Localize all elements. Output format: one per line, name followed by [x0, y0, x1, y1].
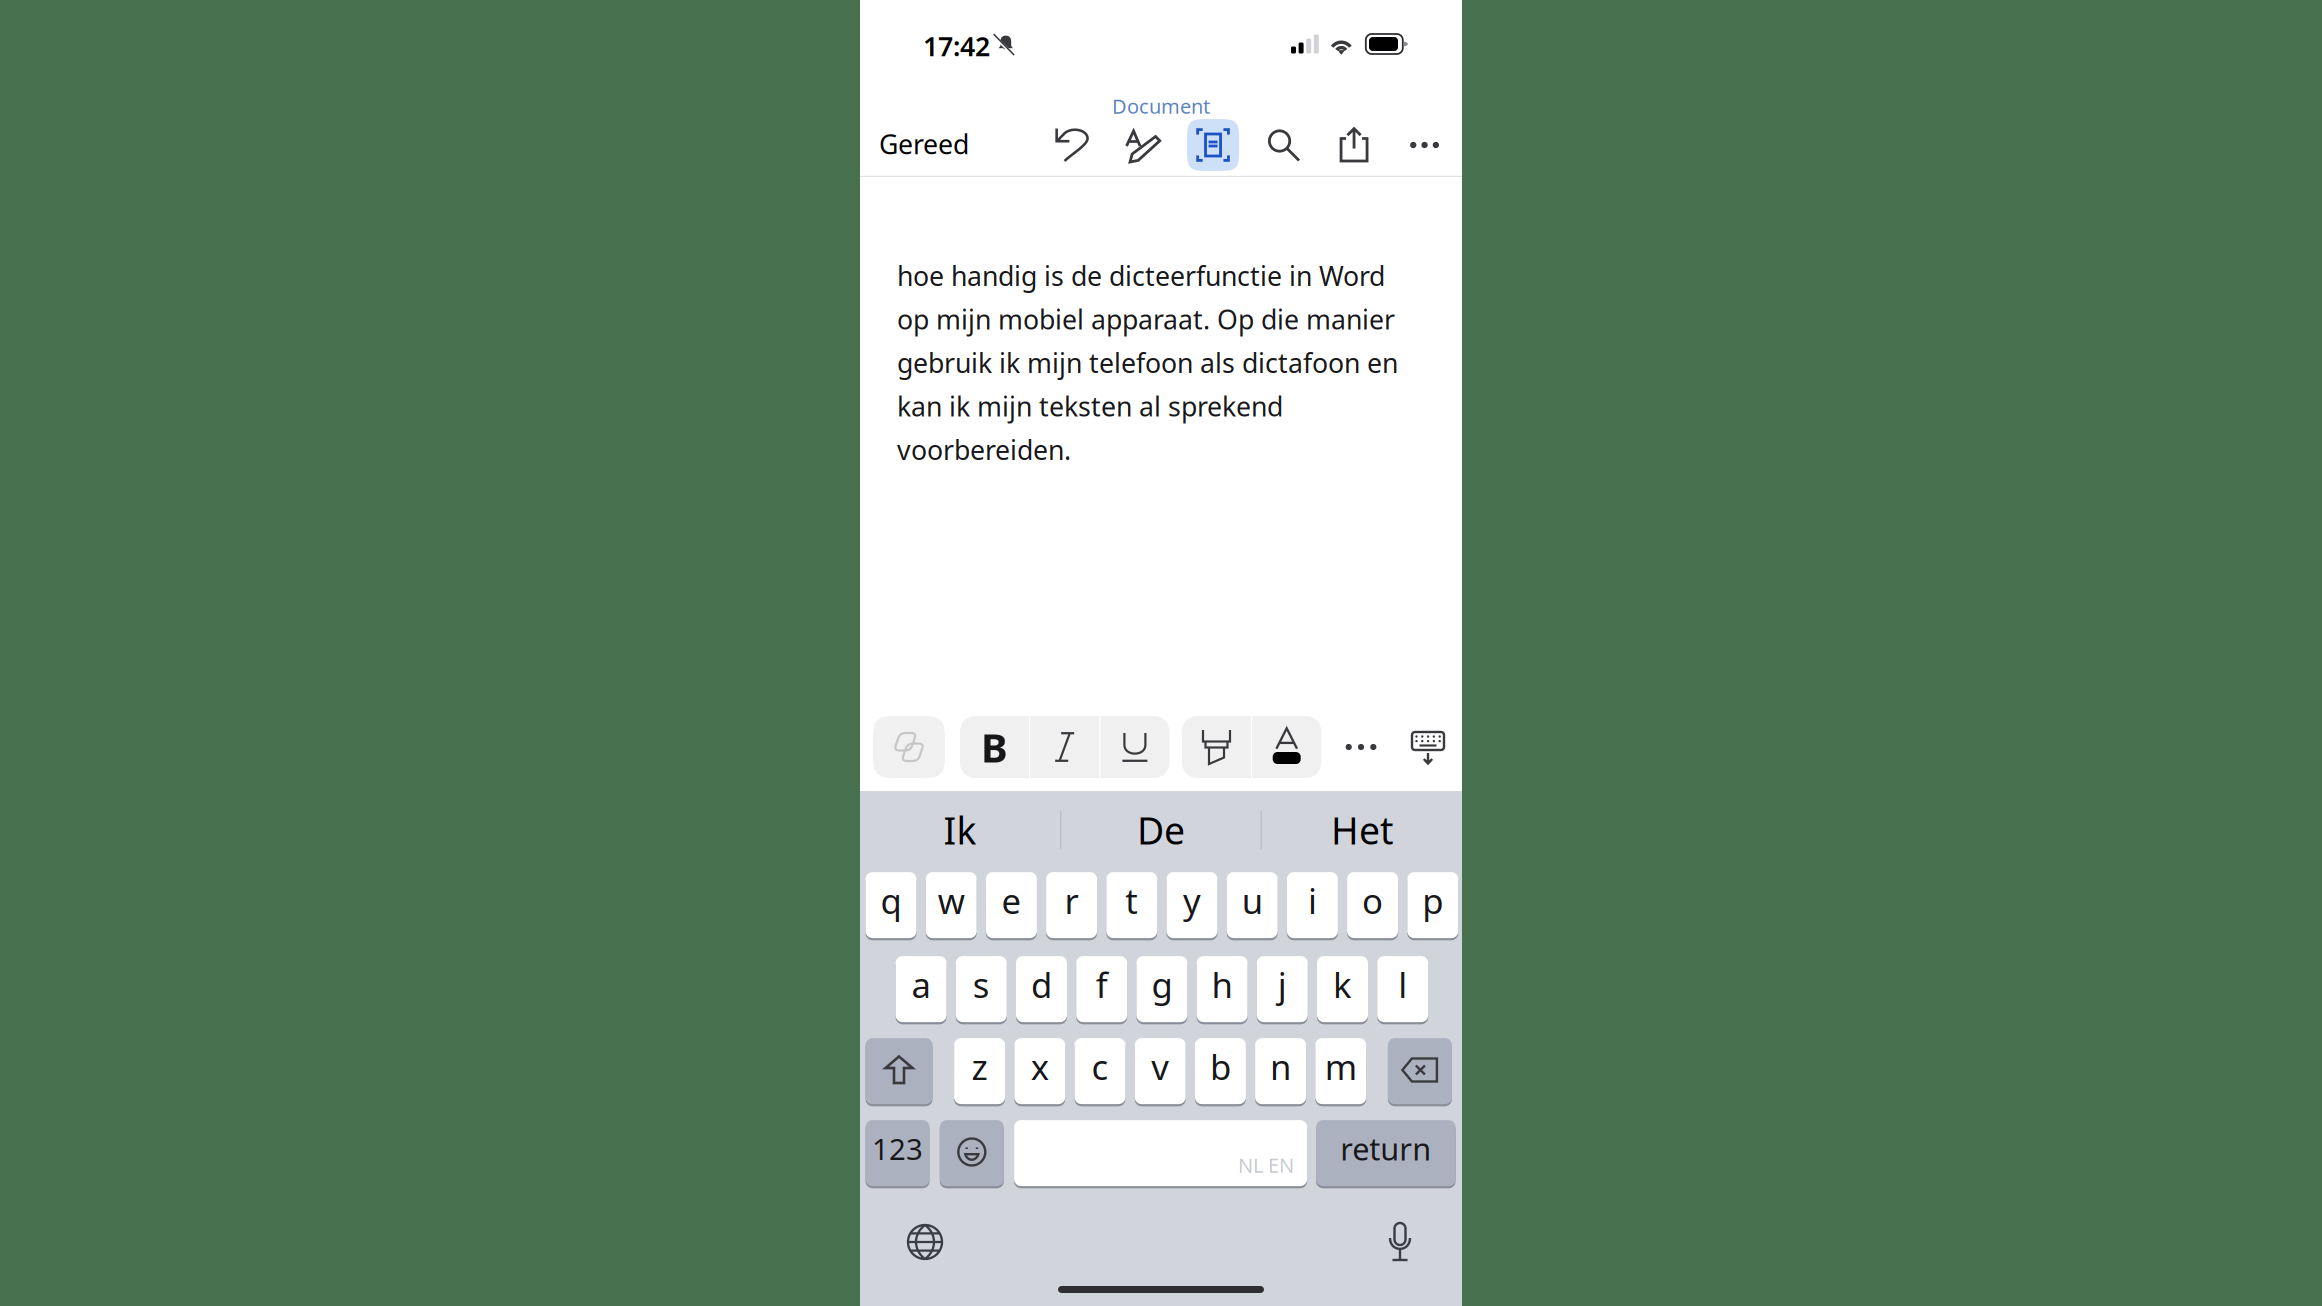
button[interactable]: a	[896, 955, 947, 1023]
staticText: 17:42	[923, 28, 990, 64]
button[interactable]: s	[956, 955, 1007, 1023]
button[interactable]: p	[1407, 871, 1458, 939]
button[interactable]: l	[1377, 955, 1428, 1023]
button[interactable]: i	[1287, 871, 1338, 939]
staticText: g	[1151, 961, 1172, 1007]
button[interactable]: Copilot	[873, 716, 945, 778]
button[interactable]: Font colour	[1252, 716, 1321, 778]
button[interactable]: k	[1317, 955, 1368, 1023]
button[interactable]: return	[1316, 1119, 1456, 1187]
staticText: r	[1065, 877, 1079, 923]
staticText: Het	[1331, 805, 1393, 855]
button[interactable]: z	[954, 1037, 1005, 1105]
button[interactable]: h	[1197, 955, 1248, 1023]
staticText: 123	[872, 1129, 923, 1168]
staticText: d	[1031, 961, 1052, 1007]
button[interactable]: Highlight	[1182, 716, 1251, 778]
staticText: voorbereiden.	[897, 432, 1071, 467]
staticText: b	[1210, 1043, 1231, 1089]
button[interactable]: Share	[1319, 117, 1389, 173]
staticText: return	[1340, 1128, 1431, 1169]
staticText: x	[1031, 1043, 1049, 1089]
staticText: B	[981, 720, 1008, 773]
button[interactable]: Change keyboard	[893, 1210, 957, 1274]
staticText: gebruik ik mijn telefoon als dictafoon e…	[897, 345, 1398, 380]
button[interactable]: De	[1061, 799, 1260, 861]
button[interactable]: Delete	[1388, 1037, 1452, 1105]
staticText: p	[1422, 877, 1443, 923]
button[interactable]: d	[1016, 955, 1067, 1023]
staticText: w	[938, 877, 965, 923]
button[interactable]: r	[1046, 871, 1097, 939]
staticText: Gereed	[879, 126, 969, 162]
staticText: y	[1183, 877, 1201, 923]
staticText: j	[1278, 961, 1287, 1007]
button[interactable]: x	[1014, 1037, 1065, 1105]
staticText: Document	[1112, 93, 1210, 119]
staticText: l	[1398, 961, 1407, 1007]
button[interactable]: Text formatting	[1107, 117, 1178, 173]
button[interactable]: w	[926, 871, 977, 939]
staticText: Ik	[944, 805, 977, 855]
button[interactable]: Hide keyboard	[1397, 716, 1459, 778]
staticText: NL EN	[1238, 1152, 1294, 1178]
staticText: q	[880, 877, 901, 923]
button[interactable]: Layout	[1178, 117, 1248, 173]
staticText: v	[1151, 1043, 1169, 1089]
button[interactable]: y	[1166, 871, 1217, 939]
staticText: k	[1333, 961, 1352, 1007]
button[interactable]: n	[1255, 1037, 1306, 1105]
button[interactable]: v	[1135, 1037, 1186, 1105]
button[interactable]: c	[1074, 1037, 1125, 1105]
button[interactable]: b	[1195, 1037, 1246, 1105]
staticText: f	[1096, 961, 1108, 1007]
staticText: o	[1362, 877, 1383, 923]
button[interactable]: Search	[1248, 117, 1319, 173]
staticText: h	[1212, 961, 1233, 1007]
button[interactable]: Ik	[860, 799, 1060, 861]
button[interactable]: g	[1136, 955, 1187, 1023]
button[interactable]: More formatting	[1330, 716, 1392, 778]
button[interactable]: q	[865, 871, 916, 939]
button[interactable]: Het	[1262, 799, 1462, 861]
button[interactable]: Emoji	[940, 1119, 1004, 1187]
button[interactable]: j	[1257, 955, 1308, 1023]
staticText: z	[972, 1043, 988, 1089]
staticText: e	[1001, 877, 1021, 923]
button[interactable]: 123	[865, 1119, 929, 1187]
button[interactable]: Space	[1014, 1119, 1307, 1187]
button[interactable]: m	[1315, 1037, 1366, 1105]
staticText: kan ik mijn teksten al sprekend	[897, 388, 1283, 424]
staticText: op mijn mobiel apparaat. Op die manier	[897, 301, 1395, 337]
staticText: n	[1270, 1043, 1291, 1089]
button[interactable]: Undo	[1037, 117, 1107, 173]
button[interactable]: u	[1227, 871, 1278, 939]
staticText: m	[1325, 1043, 1357, 1089]
button[interactable]: o	[1347, 871, 1398, 939]
staticText: i	[1308, 877, 1317, 923]
button[interactable]: More	[1389, 117, 1460, 173]
button[interactable]: Bold	[960, 716, 1029, 778]
button[interactable]: e	[986, 871, 1037, 939]
staticText: c	[1091, 1043, 1108, 1089]
staticText: t	[1125, 877, 1138, 923]
staticText: De	[1137, 805, 1185, 855]
button[interactable]: Shift	[865, 1037, 932, 1105]
staticText: s	[973, 961, 990, 1007]
button[interactable]: f	[1076, 955, 1127, 1023]
staticText: a	[912, 961, 931, 1007]
button[interactable]: Underline	[1100, 716, 1169, 778]
button[interactable]: Gereed	[879, 121, 989, 167]
staticText: u	[1242, 877, 1263, 923]
button[interactable]: t	[1106, 871, 1157, 939]
staticText: hoe handig is de dicteerfunctie in Word	[897, 258, 1385, 293]
button[interactable]: Italic	[1030, 716, 1099, 778]
button[interactable]: Dictate	[1368, 1210, 1432, 1274]
